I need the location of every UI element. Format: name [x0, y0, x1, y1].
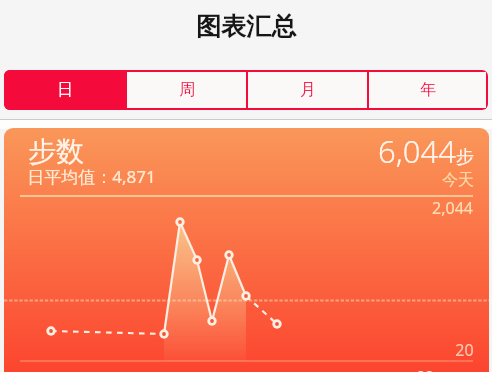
- button[interactable]: 年: [369, 72, 486, 108]
- staticText: 步数: [28, 134, 84, 169]
- staticText: 月: [300, 80, 316, 100]
- button[interactable]: 步数图表卡片: [4, 128, 489, 372]
- button[interactable]: 周: [127, 72, 246, 108]
- button[interactable]: 日: [4, 70, 125, 110]
- staticText: 年: [420, 80, 436, 100]
- staticText: 日: [57, 80, 73, 100]
- staticText: 今天: [442, 170, 474, 190]
- staticText: 图表汇总: [196, 11, 296, 42]
- staticText: 00: [416, 365, 434, 372]
- staticText: 周: [179, 80, 195, 100]
- staticText: 日平均值：4,871: [27, 165, 156, 188]
- staticText: 步: [456, 146, 474, 169]
- button[interactable]: 月: [248, 72, 367, 108]
- staticText: 6,044: [378, 130, 456, 172]
- staticText: 2,044: [432, 197, 473, 219]
- staticText: 20: [455, 339, 474, 361]
